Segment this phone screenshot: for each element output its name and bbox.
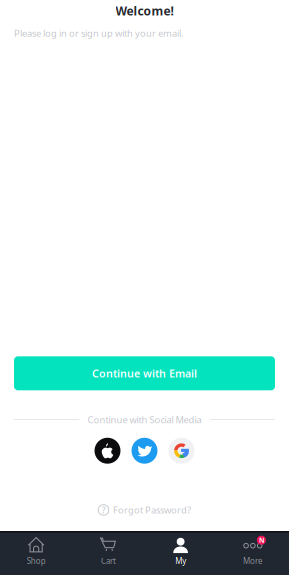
- staticText: My: [175, 556, 186, 566]
- button[interactable]: Continue with Google: [168, 438, 194, 464]
- button[interactable]: My: [144, 528, 217, 575]
- staticText: N: [259, 536, 264, 545]
- staticText: Continue with Social Media: [87, 413, 201, 426]
- button[interactable]: N: [217, 528, 289, 575]
- staticText: Welcome!: [115, 3, 173, 19]
- button[interactable]: Continue with Email: [14, 356, 275, 390]
- staticText: Forgot Password?: [113, 504, 191, 516]
- button[interactable]: ?: [92, 499, 197, 521]
- staticText: ?: [101, 504, 105, 516]
- button[interactable]: Shop: [0, 528, 72, 575]
- button[interactable]: Cart: [72, 528, 144, 575]
- staticText: Shop: [27, 556, 46, 566]
- staticText: Please log in or sign up with your email…: [14, 27, 184, 39]
- staticText: More: [243, 556, 263, 566]
- staticText: Continue with Email: [92, 366, 197, 380]
- button[interactable]: Continue with Apple: [94, 438, 120, 464]
- button[interactable]: Continue with Twitter: [131, 438, 157, 464]
- staticText: Cart: [101, 556, 116, 566]
